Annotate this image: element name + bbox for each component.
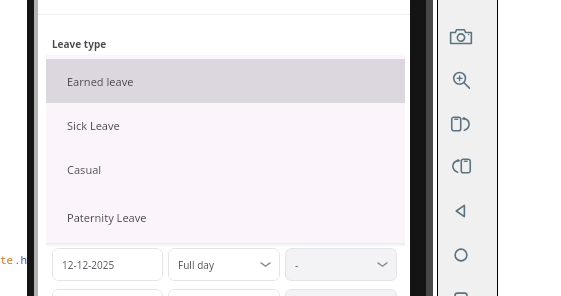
button[interactable]: Home xyxy=(447,241,475,269)
button[interactable]: Rotate right xyxy=(447,152,475,180)
button[interactable] xyxy=(52,289,163,296)
staticText: Paternity Leave xyxy=(67,210,147,225)
button[interactable] xyxy=(285,289,397,296)
button[interactable]: Full day xyxy=(168,248,280,281)
staticText: Casual xyxy=(67,162,102,177)
button[interactable] xyxy=(168,289,280,296)
staticText: te xyxy=(0,252,14,267)
staticText: Full day xyxy=(178,258,214,272)
staticText: Sick Leave xyxy=(67,118,120,133)
button[interactable]: Earned leave xyxy=(46,59,405,103)
staticText: - xyxy=(295,258,299,272)
button[interactable]: 12-12-2025 xyxy=(52,248,163,281)
button[interactable]: Take screenshot xyxy=(447,23,475,51)
button[interactable]: Back xyxy=(447,197,475,225)
button[interactable]: Overview xyxy=(447,285,475,296)
staticText: 12-12-2025 xyxy=(62,258,115,272)
button[interactable]: Sick Leave xyxy=(46,103,405,147)
button[interactable]: Casual xyxy=(46,147,405,191)
button[interactable]: Rotate left xyxy=(447,110,475,138)
staticText: Leave type xyxy=(52,37,107,51)
button[interactable]: - xyxy=(285,248,397,281)
button[interactable]: Paternity Leave xyxy=(46,191,405,243)
button[interactable]: Zoom xyxy=(447,66,475,94)
staticText: Earned leave xyxy=(67,74,134,89)
staticText: .h xyxy=(14,252,28,267)
